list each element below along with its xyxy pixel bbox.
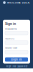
button[interactable]: Sign In — [5, 57, 28, 62]
staticText: Sign In — [11, 58, 22, 61]
staticText: Email address — [5, 28, 17, 30]
staticText: Welcome back — [7, 1, 30, 4]
staticText: Sign in — [5, 22, 16, 26]
staticText: Security code — [5, 47, 17, 49]
button[interactable]: Forgot your password? — [5, 65, 27, 68]
staticText: Password — [5, 38, 14, 40]
staticText: Forgot your password? — [5, 65, 27, 68]
